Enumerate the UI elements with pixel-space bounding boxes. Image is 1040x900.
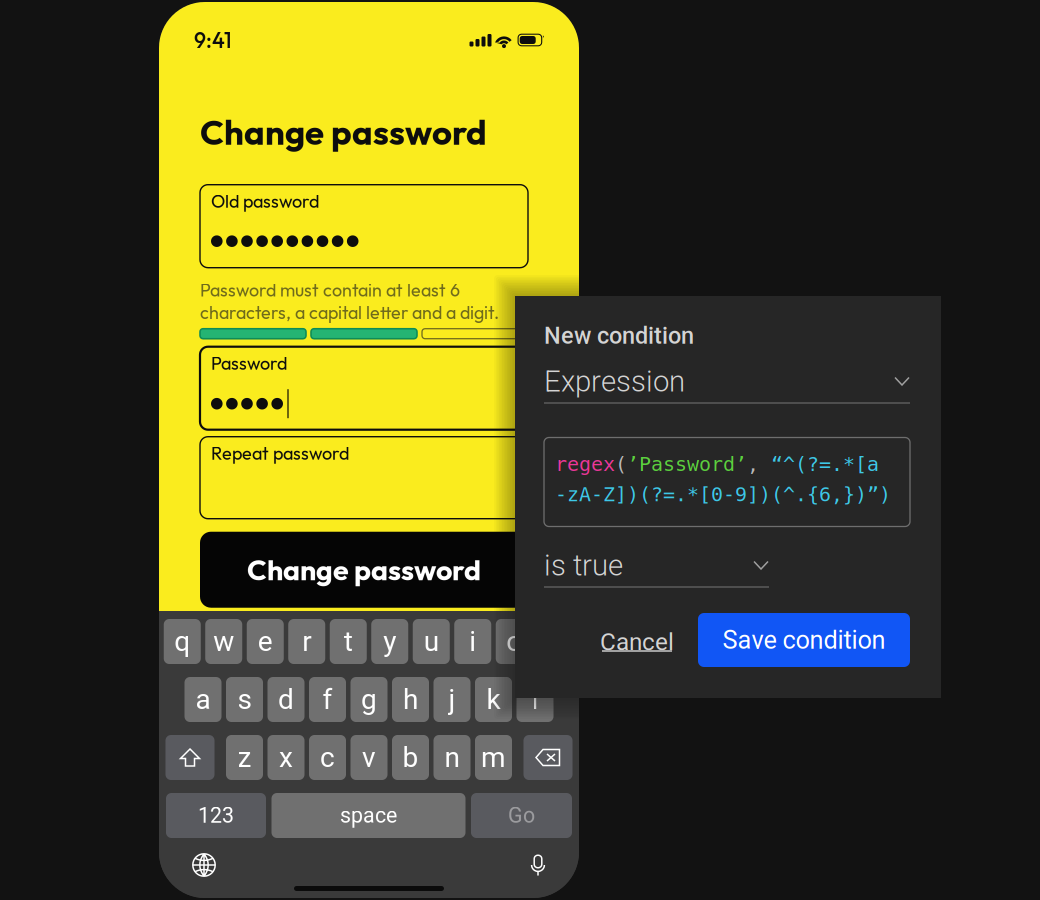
staticText: “^(?=.*[a bbox=[759, 452, 879, 476]
staticText: u bbox=[424, 625, 439, 658]
button[interactable]: e bbox=[247, 619, 284, 664]
staticText: b bbox=[402, 741, 418, 774]
staticText: e bbox=[258, 625, 273, 658]
staticText: Old password bbox=[211, 190, 319, 212]
button[interactable]: 123 bbox=[166, 793, 266, 838]
button[interactable]: Go bbox=[471, 793, 572, 838]
button[interactable]: Shift bbox=[165, 735, 214, 780]
button[interactable]: Change password bbox=[200, 532, 528, 608]
staticText: v bbox=[362, 741, 376, 774]
button[interactable]: w bbox=[205, 619, 242, 664]
button[interactable]: y bbox=[371, 619, 408, 664]
button[interactable]: Dictation bbox=[529, 852, 547, 877]
staticText: w bbox=[213, 625, 234, 658]
staticText: o bbox=[506, 625, 522, 658]
button[interactable]: space bbox=[271, 793, 465, 838]
button[interactable]: Password bbox=[200, 347, 528, 430]
button[interactable]: q bbox=[164, 619, 201, 664]
button[interactable]: d bbox=[267, 677, 304, 722]
staticText: g bbox=[361, 683, 377, 716]
button[interactable]: z bbox=[226, 735, 263, 780]
button[interactable]: c bbox=[309, 735, 346, 780]
button[interactable]: Repeat password bbox=[200, 437, 528, 519]
staticText: n bbox=[444, 741, 459, 774]
button[interactable]: Expression bbox=[544, 365, 910, 403]
staticText: s bbox=[237, 683, 251, 716]
staticText: c bbox=[320, 741, 335, 774]
staticText: m bbox=[481, 741, 506, 774]
button[interactable]: Delete bbox=[523, 735, 572, 780]
button[interactable]: f bbox=[309, 677, 346, 722]
staticText: 123 bbox=[198, 803, 234, 828]
staticText: k bbox=[486, 683, 500, 716]
staticText: ’Password’ bbox=[627, 452, 747, 476]
staticText: j bbox=[448, 683, 455, 716]
button[interactable]: m bbox=[475, 735, 512, 780]
button[interactable]: r bbox=[288, 619, 325, 664]
staticText: Expression bbox=[544, 364, 685, 399]
button[interactable]: v bbox=[350, 735, 387, 780]
staticText: l bbox=[531, 683, 538, 716]
button[interactable]: l bbox=[516, 677, 553, 722]
staticText: x bbox=[279, 741, 293, 774]
staticText: ( bbox=[615, 452, 627, 476]
staticText: z bbox=[237, 741, 251, 774]
staticText: f bbox=[322, 683, 332, 716]
staticText: Password bbox=[211, 352, 287, 374]
staticText: Go bbox=[508, 803, 535, 828]
staticText: Change password bbox=[200, 110, 487, 154]
staticText: space bbox=[340, 803, 397, 828]
staticText: Save condition bbox=[722, 625, 885, 655]
staticText: Change password bbox=[247, 552, 481, 588]
staticText: t bbox=[344, 625, 353, 658]
staticText: y bbox=[383, 625, 396, 658]
staticText: New condition bbox=[544, 322, 694, 349]
button[interactable]: s bbox=[226, 677, 263, 722]
button[interactable]: Old password bbox=[200, 185, 528, 268]
button[interactable]: a bbox=[184, 677, 221, 722]
staticText: q bbox=[174, 625, 190, 658]
button[interactable]: b bbox=[392, 735, 429, 780]
button[interactable]: t bbox=[330, 619, 367, 664]
button[interactable]: Next keyboard bbox=[191, 852, 217, 878]
button[interactable]: x bbox=[267, 735, 304, 780]
button[interactable]: u bbox=[413, 619, 450, 664]
staticText: h bbox=[403, 683, 418, 716]
staticText: Cancel bbox=[600, 628, 674, 656]
staticText: 9:41 bbox=[194, 27, 232, 53]
staticText: regex bbox=[555, 452, 615, 476]
button[interactable]: k bbox=[475, 677, 512, 722]
staticText: , bbox=[747, 452, 759, 476]
button[interactable]: n bbox=[433, 735, 470, 780]
button[interactable]: h bbox=[392, 677, 429, 722]
staticText: d bbox=[278, 683, 294, 716]
button[interactable]: o bbox=[496, 619, 533, 664]
staticText: is true bbox=[544, 548, 623, 583]
staticText: r bbox=[302, 625, 311, 658]
staticText: Password must contain at least 6 charact… bbox=[200, 279, 499, 324]
staticText: -zA-Z])(?=.*[0-9])(^.{6,})”) bbox=[555, 483, 891, 506]
button[interactable]: j bbox=[433, 677, 470, 722]
staticText: a bbox=[195, 683, 210, 716]
button[interactable]: i bbox=[454, 619, 491, 664]
button[interactable]: g bbox=[350, 677, 387, 722]
button[interactable]: Cancel bbox=[600, 612, 674, 668]
staticText: Repeat password bbox=[211, 442, 349, 464]
button[interactable]: Save condition bbox=[698, 613, 910, 667]
button[interactable]: is true bbox=[544, 549, 769, 587]
staticText: i bbox=[469, 625, 476, 658]
